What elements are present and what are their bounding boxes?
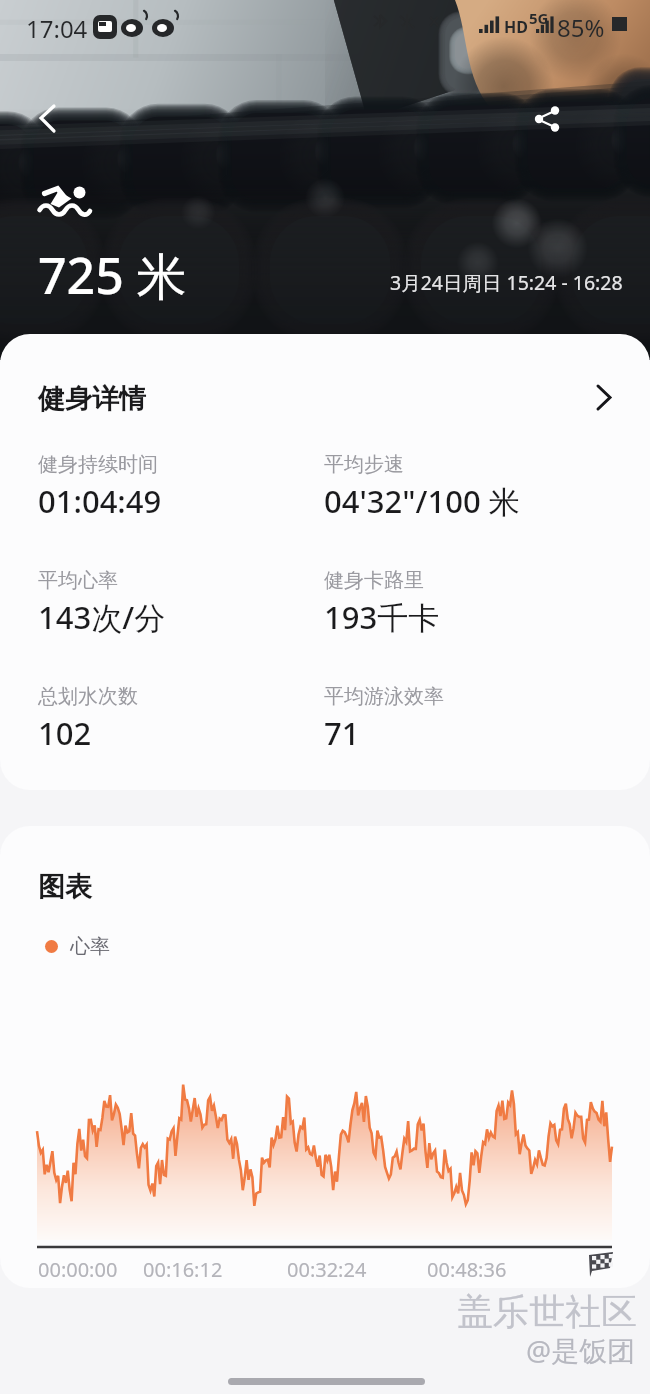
staticText: 3月24日周日 15:24 - 16:28 bbox=[390, 269, 623, 296]
staticText: 图表 bbox=[38, 870, 92, 904]
staticText: 01:04:49 bbox=[38, 480, 162, 522]
staticText: 17:04 bbox=[26, 12, 88, 45]
button[interactable]: Back bbox=[28, 96, 72, 140]
staticText: 85% bbox=[557, 11, 605, 44]
staticText: 盖乐世社区 bbox=[457, 1289, 637, 1334]
staticText: 00:32:24 bbox=[287, 1256, 367, 1283]
staticText: 健身持续时间 bbox=[38, 452, 158, 477]
staticText: @是饭团 bbox=[526, 1331, 636, 1369]
staticText: 5G bbox=[529, 8, 549, 28]
staticText: 健身详情 bbox=[38, 382, 146, 416]
staticText: 04'32"/100 米 bbox=[324, 480, 520, 522]
button[interactable]: Share bbox=[525, 96, 569, 140]
staticText: HD bbox=[504, 16, 528, 38]
staticText: 71 bbox=[324, 712, 360, 754]
button[interactable]: 健身详情 bbox=[0, 334, 650, 464]
staticText: 102 bbox=[38, 712, 92, 754]
staticText: 平均步速 bbox=[324, 452, 404, 477]
staticText: 193千卡 bbox=[324, 596, 440, 638]
other: Finish bbox=[586, 1251, 616, 1279]
staticText: 健身卡路里 bbox=[324, 568, 424, 593]
staticText: 00:00:00 bbox=[38, 1256, 118, 1283]
staticText: 心率 bbox=[70, 934, 110, 959]
staticText: 平均游泳效率 bbox=[324, 684, 444, 709]
staticText: 总划水次数 bbox=[38, 684, 138, 709]
staticText: 143次/分 bbox=[38, 596, 166, 638]
staticText: 平均心率 bbox=[38, 568, 118, 593]
staticText: 00:48:36 bbox=[427, 1256, 507, 1283]
other: Swimming bbox=[38, 183, 92, 217]
staticText: 725 米 bbox=[38, 241, 187, 309]
staticText: 00:16:12 bbox=[143, 1256, 223, 1283]
